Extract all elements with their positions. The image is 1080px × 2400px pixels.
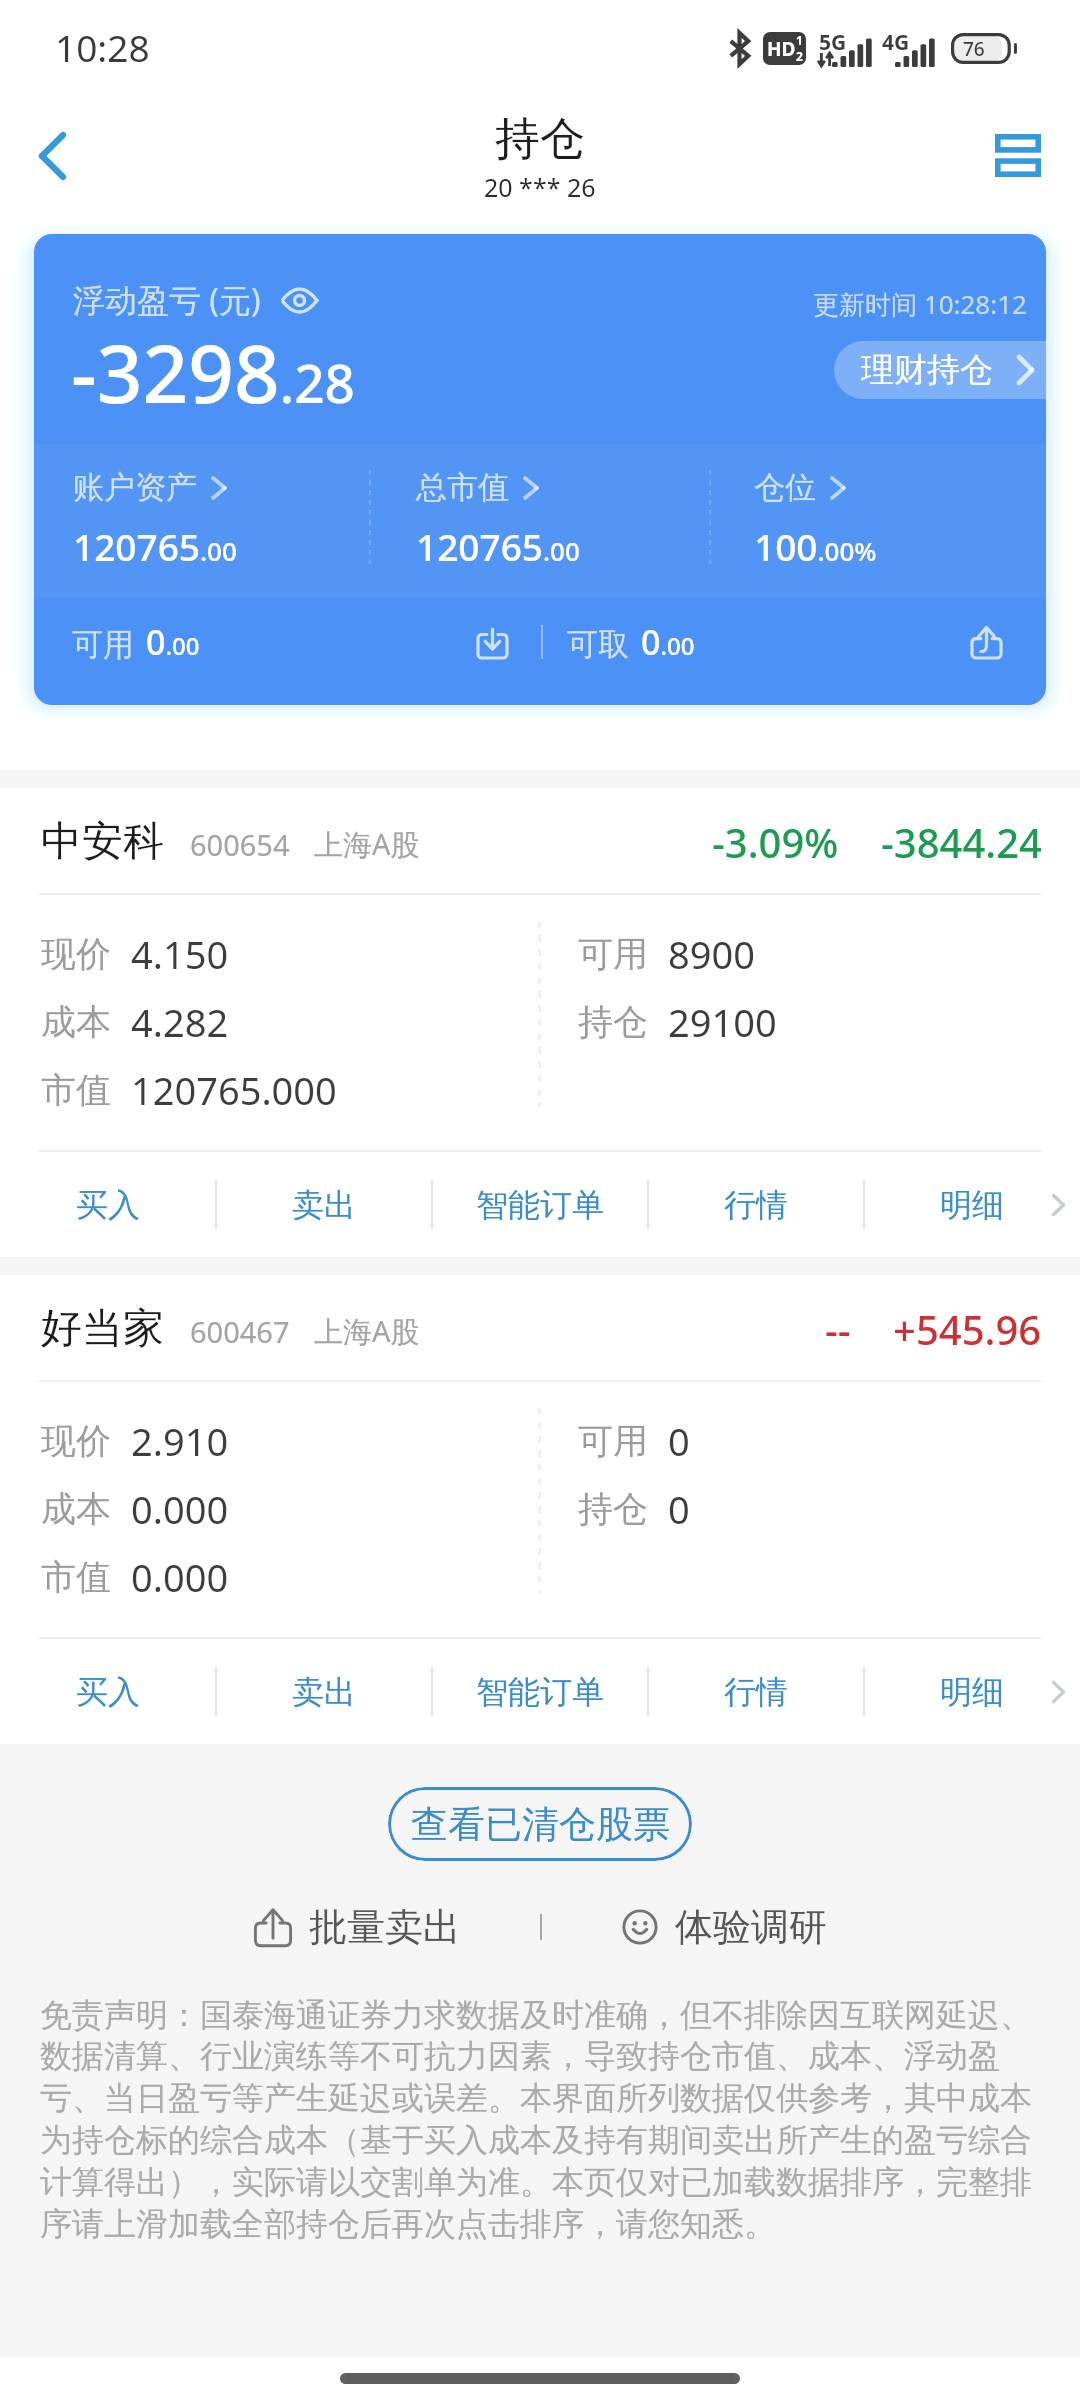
staticText: 0 [668,1415,690,1467]
button[interactable]: Back [10,114,94,198]
button[interactable]: 行情 [648,1639,864,1744]
staticText: 理财持仓 [861,349,993,391]
staticText: 可用 [578,932,648,976]
staticText: 行情 [724,1185,788,1225]
staticText: 智能订单 [476,1185,604,1225]
button[interactable]: Sort [976,113,1060,197]
staticText: 0.000 [131,1551,229,1603]
staticText: 10:28 [55,22,150,72]
staticText: 仓位 [754,468,816,507]
staticText: 0 [668,1483,690,1535]
staticText: 4.150 [131,928,229,980]
staticText: 持仓 [495,111,585,168]
button[interactable]: Withdraw [960,616,1012,668]
button[interactable]: 理财持仓 [834,341,1046,399]
staticText: 体验调研 [675,1903,827,1951]
staticText: 成本 [41,1487,111,1531]
staticText: 批量卖出 [309,1903,461,1951]
button[interactable]: 行情 [648,1152,864,1257]
staticText: 可取 [567,625,629,664]
button[interactable]: 买入 [0,1152,216,1257]
staticText: 现价 [41,932,111,976]
staticText: 4G [882,28,910,57]
staticText: 20 *** 26 [484,170,596,204]
staticText: 查看已清仓股票 [411,1801,670,1848]
button[interactable]: 卖出 [216,1152,432,1257]
staticText: 600654 [190,825,290,864]
staticText: 2 [796,48,803,64]
staticText: 卖出 [292,1185,356,1225]
button[interactable]: Deposit [465,616,517,668]
staticText: 120765.00 [416,521,580,571]
staticText: 持仓 [578,1487,648,1531]
staticText: 持仓 [578,1000,648,1044]
staticText: -3844.24 [881,815,1042,869]
staticText: 2.910 [131,1415,229,1467]
staticText: 成本 [41,1000,111,1044]
staticText: 行情 [724,1672,788,1712]
staticText: 可用 [72,625,134,664]
staticText: 120765.00 [73,521,237,571]
staticText: -- [825,1302,851,1356]
staticText: 免责声明：国泰海通证券力求数据及时准确，但不排除因互联网延迟、数据清算、行业演练… [40,1995,1040,2245]
staticText: 120765.000 [131,1064,337,1116]
staticText: 买入 [76,1185,140,1225]
staticText: 76 [963,36,985,62]
staticText: 1 [796,32,803,48]
staticText: 明细 [940,1185,1004,1225]
staticText: 600467 [190,1312,290,1351]
staticText: -3.09% [712,815,839,869]
staticText: 29100 [668,996,777,1048]
staticText: 账户资产 [73,468,197,507]
staticText: -3298.28 [71,317,355,426]
staticText: 5G [819,28,847,57]
button[interactable]: 中安科 [0,788,1080,895]
staticText: 0.00 [641,619,695,665]
staticText: 上海A股 [314,1311,420,1351]
staticText: +545.96 [893,1302,1042,1356]
staticText: 买入 [76,1672,140,1712]
staticText: 智能订单 [476,1672,604,1712]
staticText: 市值 [41,1555,111,1599]
staticText: 卖出 [292,1672,356,1712]
staticText: 上海A股 [314,824,420,864]
staticText: 0.00 [146,619,200,665]
staticText: 好当家 [41,1303,164,1355]
button[interactable]: 明细 [864,1152,1080,1257]
button[interactable]: 智能订单 [432,1152,648,1257]
button[interactable]: 买入 [0,1639,216,1744]
staticText: 浮动盈亏 (元) [73,278,261,322]
button[interactable]: 体验调研 [613,1895,835,1959]
staticText: 0.000 [131,1483,229,1535]
button[interactable]: 智能订单 [432,1639,648,1744]
staticText: 明细 [940,1672,1004,1712]
button[interactable]: 卖出 [216,1639,432,1744]
staticText: 8900 [668,928,755,980]
staticText: 现价 [41,1419,111,1463]
staticText: 中安科 [41,816,164,868]
button[interactable]: 好当家 [0,1275,1080,1382]
staticText: HD [767,36,796,62]
staticText: 总市值 [416,468,509,507]
staticText: 可用 [578,1419,648,1463]
button[interactable]: 批量卖出 [245,1895,469,1959]
button[interactable]: 明细 [864,1639,1080,1744]
button[interactable]: 查看已清仓股票 [388,1787,692,1861]
staticText: 市值 [41,1068,111,1112]
staticText: 更新时间 10:28:12 [813,286,1027,322]
staticText: 100.00% [754,521,877,571]
staticText: 4.282 [131,996,229,1048]
